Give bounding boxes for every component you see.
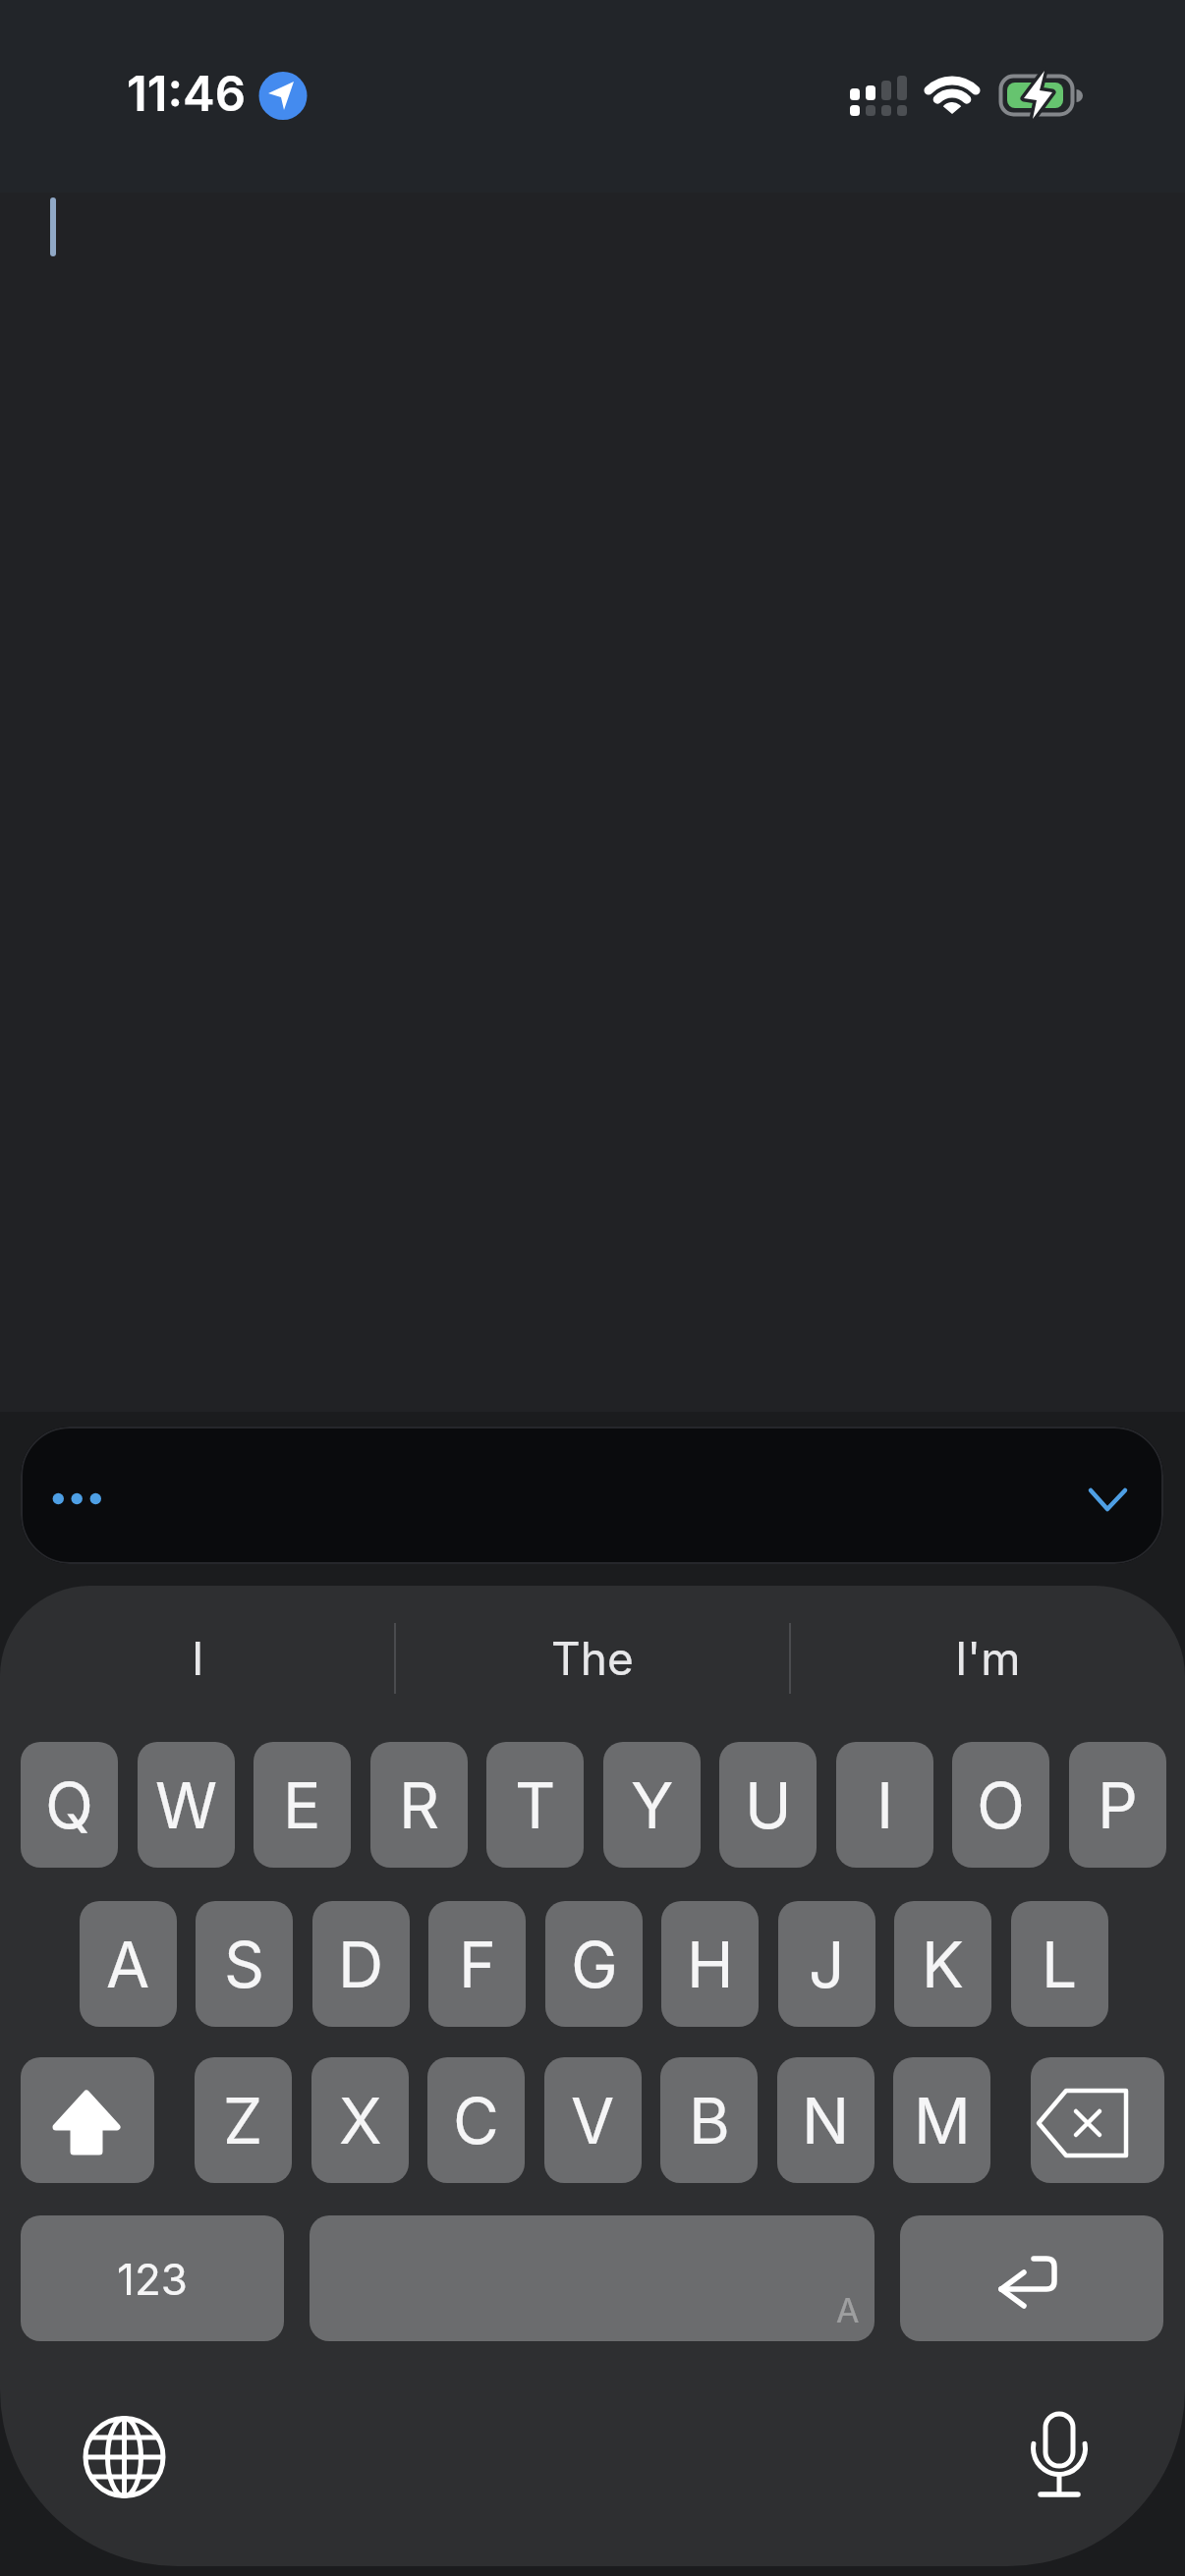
button[interactable]: B (660, 2057, 758, 2183)
button[interactable]: The (395, 1616, 790, 1701)
button[interactable] (21, 1427, 1163, 1564)
button[interactable]: Y (603, 1742, 701, 1868)
button[interactable]: Q (21, 1742, 118, 1868)
button[interactable]: E (254, 1742, 351, 1868)
staticText: X (339, 2083, 382, 2158)
staticText: I (876, 1767, 894, 1843)
staticText: Z (223, 2083, 263, 2158)
button[interactable] (79, 2412, 171, 2504)
staticText: The (551, 1631, 634, 1686)
staticText: U (745, 1767, 792, 1843)
staticText: 123 (117, 2253, 188, 2305)
staticText: I'm (955, 1631, 1021, 1686)
staticText: M (914, 2083, 971, 2158)
staticText: L (1042, 1927, 1078, 2002)
button[interactable]: S (196, 1901, 293, 2027)
button[interactable]: H (661, 1901, 759, 2027)
button[interactable]: J (778, 1901, 875, 2027)
staticText: J (809, 1927, 845, 2002)
button[interactable] (21, 2057, 154, 2183)
staticText: R (399, 1767, 440, 1843)
button[interactable]: Z (195, 2057, 292, 2183)
button[interactable]: M (893, 2057, 990, 2183)
staticText: P (1098, 1767, 1138, 1843)
staticText: V (571, 2083, 615, 2158)
button[interactable]: P (1069, 1742, 1166, 1868)
staticText: W (155, 1767, 218, 1843)
staticText: A (836, 2290, 860, 2330)
staticText: 11:46 (127, 65, 247, 123)
staticText: K (922, 1927, 964, 2002)
button[interactable]: G (545, 1901, 643, 2027)
button[interactable] (900, 2215, 1163, 2341)
button[interactable]: 123 (21, 2215, 284, 2341)
staticText: G (571, 1927, 618, 2002)
button[interactable]: K (894, 1901, 991, 2027)
staticText: Q (45, 1767, 93, 1843)
staticText: B (689, 2083, 730, 2158)
staticText: F (459, 1927, 496, 2002)
button[interactable]: I (0, 1616, 395, 1701)
staticText: A (106, 1927, 150, 2002)
button[interactable]: A (80, 1901, 177, 2027)
staticText: I (192, 1631, 204, 1686)
button[interactable]: O (952, 1742, 1049, 1868)
staticText: N (802, 2083, 850, 2158)
button[interactable]: V (544, 2057, 642, 2183)
button[interactable]: C (427, 2057, 525, 2183)
button[interactable] (310, 2215, 875, 2341)
button[interactable] (1031, 2057, 1164, 2183)
button[interactable]: I'm (790, 1616, 1185, 1701)
button[interactable]: N (777, 2057, 875, 2183)
staticText: D (338, 1927, 384, 2002)
button[interactable]: X (311, 2057, 409, 2183)
button[interactable]: I (836, 1742, 933, 1868)
staticText: H (687, 1927, 734, 2002)
staticText: Y (631, 1767, 674, 1843)
staticText: S (224, 1927, 265, 2002)
staticText: O (977, 1767, 1025, 1843)
staticText: C (453, 2083, 499, 2158)
button[interactable]: F (428, 1901, 526, 2027)
button[interactable]: U (719, 1742, 817, 1868)
button[interactable]: R (370, 1742, 468, 1868)
button[interactable]: D (312, 1901, 410, 2027)
button[interactable]: L (1011, 1901, 1108, 2027)
staticText: T (515, 1767, 556, 1843)
button[interactable]: W (138, 1742, 235, 1868)
button[interactable] (1022, 2402, 1100, 2504)
staticText: E (283, 1767, 321, 1843)
button[interactable]: T (486, 1742, 584, 1868)
